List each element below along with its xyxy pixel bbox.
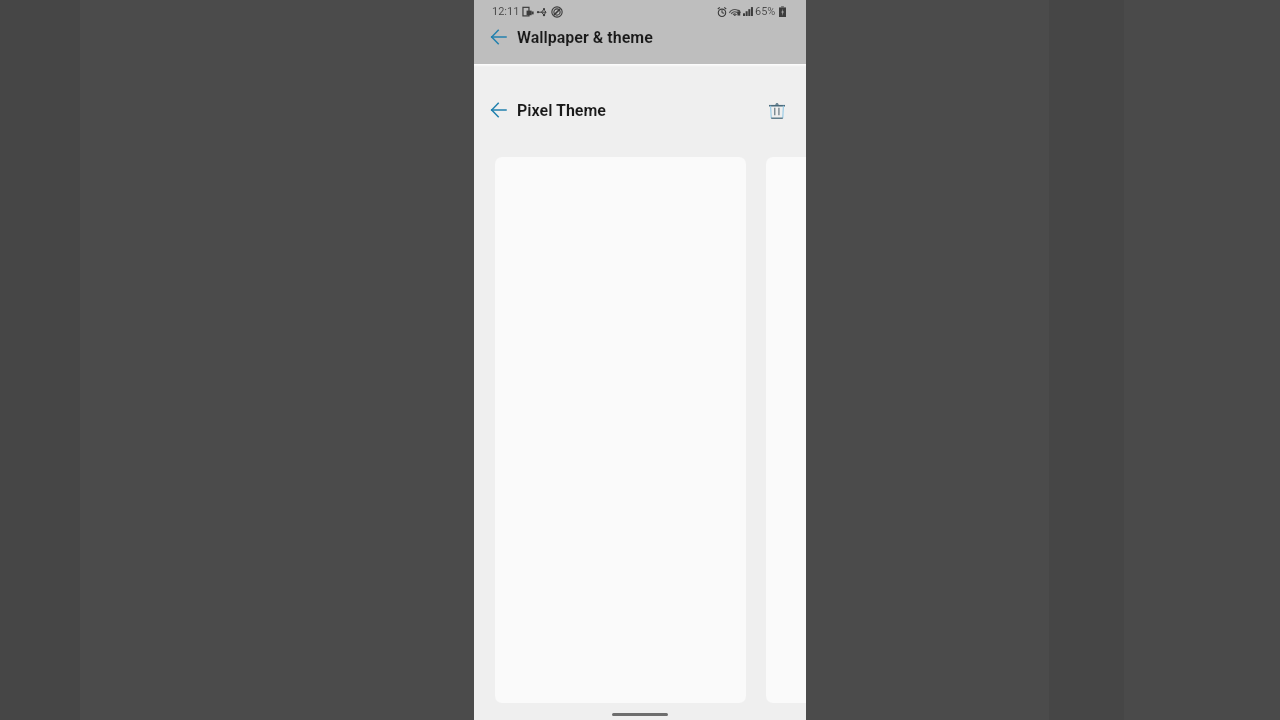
staticText: Wallpaper & theme bbox=[517, 28, 653, 47]
button[interactable]: Back bbox=[482, 95, 514, 125]
staticText: Pixel Theme bbox=[517, 101, 606, 120]
staticText: 12:11 bbox=[492, 5, 520, 18]
button[interactable]: Delete bbox=[762, 96, 791, 124]
staticText: 65% bbox=[755, 5, 776, 18]
button[interactable]: Back bbox=[482, 22, 514, 52]
